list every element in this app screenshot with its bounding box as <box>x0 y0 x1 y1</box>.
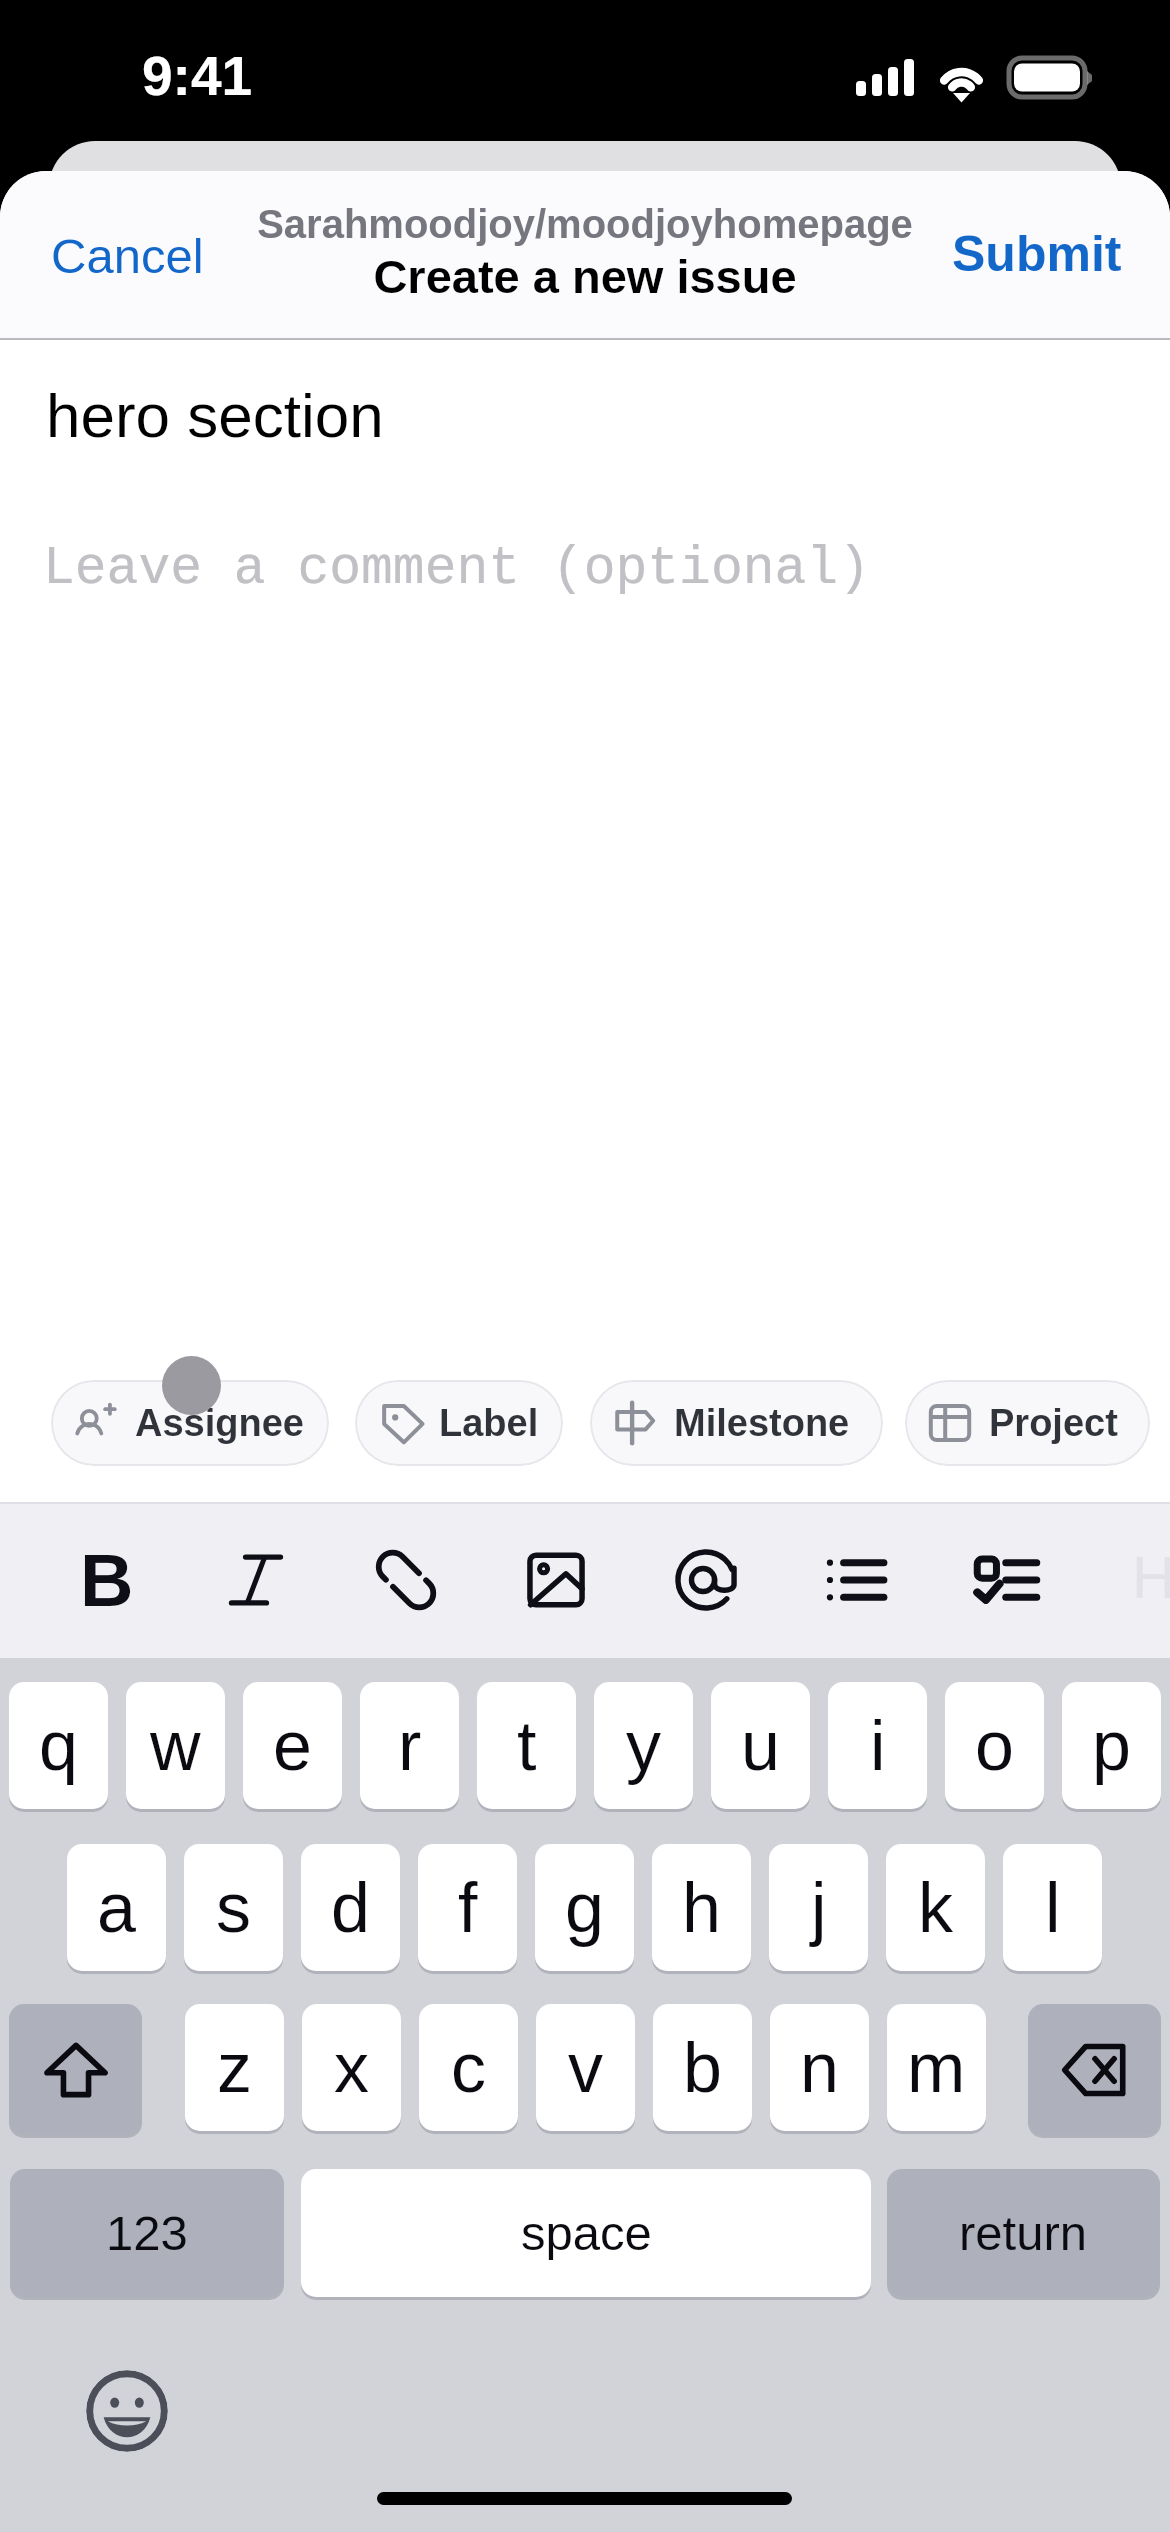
button[interactable]: a <box>67 1844 166 1971</box>
button[interactable]: Submit <box>932 199 1142 309</box>
staticText: w <box>150 1707 201 1785</box>
button[interactable]: i <box>828 1682 927 1809</box>
button[interactable]: j <box>769 1844 868 1971</box>
staticText: Milestone <box>674 1402 850 1444</box>
button[interactable]: f <box>418 1844 517 1971</box>
button[interactable]: r <box>360 1682 459 1809</box>
staticText: B <box>80 1539 134 1622</box>
button[interactable]: e <box>243 1682 342 1809</box>
staticText: k <box>918 1869 953 1947</box>
staticText: d <box>331 1869 370 1947</box>
button[interactable]: k <box>886 1844 985 1971</box>
button[interactable]: return <box>887 2169 1160 2297</box>
button[interactable]: Bulleted list <box>796 1520 916 1640</box>
button[interactable]: Bold <box>47 1520 167 1640</box>
button[interactable]: u <box>711 1682 810 1809</box>
staticText: m <box>907 2029 966 2107</box>
staticText: Label <box>439 1402 539 1444</box>
staticText: b <box>683 2029 722 2107</box>
staticText: i <box>870 1707 886 1785</box>
staticText: Create a new issue <box>0 250 1170 303</box>
button[interactable]: space <box>301 2169 871 2297</box>
staticText: u <box>741 1707 780 1785</box>
button[interactable]: Mention <box>646 1520 766 1640</box>
button[interactable]: q <box>9 1682 108 1809</box>
button[interactable]: w <box>126 1682 225 1809</box>
staticText: y <box>626 1707 661 1785</box>
button[interactable]: p <box>1062 1682 1161 1809</box>
button[interactable]: Italic <box>196 1520 316 1640</box>
staticText: g <box>565 1869 604 1947</box>
staticText: j <box>811 1869 827 1947</box>
staticText: p <box>1092 1707 1131 1785</box>
staticText: 9:41 <box>142 45 253 106</box>
staticText: return <box>959 2206 1088 2261</box>
button[interactable]: Shift <box>9 2004 142 2135</box>
button[interactable]: y <box>594 1682 693 1809</box>
button[interactable]: Assignee <box>51 1380 329 1466</box>
staticText: 123 <box>106 2206 188 2261</box>
staticText: z <box>217 2029 252 2107</box>
button[interactable]: 123 <box>10 2169 284 2297</box>
button[interactable]: o <box>945 1682 1044 1809</box>
staticText: t <box>517 1707 537 1785</box>
staticText: h <box>682 1869 721 1947</box>
staticText: Assignee <box>135 1402 304 1444</box>
staticText: f <box>458 1869 478 1947</box>
button[interactable]: d <box>301 1844 400 1971</box>
staticText: H <box>1132 1544 1170 1611</box>
staticText: Project <box>989 1402 1118 1444</box>
staticText: n <box>800 2029 839 2107</box>
button[interactable]: Link <box>346 1520 466 1640</box>
button[interactable]: s <box>184 1844 283 1971</box>
staticText: r <box>398 1707 422 1785</box>
button[interactable]: z <box>185 2004 284 2131</box>
button[interactable]: l <box>1003 1844 1102 1971</box>
button[interactable]: Cancel <box>24 201 230 311</box>
button[interactable]: v <box>536 2004 635 2131</box>
staticText: Submit <box>952 226 1122 282</box>
staticText: hero section <box>46 381 384 450</box>
button[interactable]: Milestone <box>590 1380 883 1466</box>
staticText: Leave a comment (optional) <box>43 539 870 599</box>
button[interactable]: Project <box>905 1380 1150 1466</box>
button[interactable]: Image <box>496 1520 616 1640</box>
staticText: Sarahmoodjoy/moodjoyhomepage <box>0 202 1170 247</box>
button[interactable]: Label <box>355 1380 563 1466</box>
button[interactable]: g <box>535 1844 634 1971</box>
staticText: a <box>97 1869 136 1947</box>
button[interactable]: t <box>477 1682 576 1809</box>
button[interactable]: h <box>652 1844 751 1971</box>
staticText: o <box>975 1707 1014 1785</box>
button[interactable]: m <box>887 2004 986 2131</box>
button[interactable]: b <box>653 2004 752 2131</box>
button[interactable]: n <box>770 2004 869 2131</box>
button[interactable]: Backspace <box>1028 2004 1161 2135</box>
staticText: Cancel <box>51 229 204 284</box>
button[interactable]: Emoji keyboard <box>86 2370 168 2452</box>
staticText: q <box>39 1707 78 1785</box>
button[interactable]: x <box>302 2004 401 2131</box>
staticText: v <box>568 2029 603 2107</box>
staticText: c <box>451 2029 486 2107</box>
staticText: l <box>1045 1869 1061 1947</box>
staticText: s <box>216 1869 251 1947</box>
staticText: e <box>273 1707 312 1785</box>
button[interactable]: c <box>419 2004 518 2131</box>
staticText: space <box>521 2206 652 2261</box>
staticText: x <box>334 2029 369 2107</box>
button[interactable]: Task list <box>947 1520 1067 1640</box>
